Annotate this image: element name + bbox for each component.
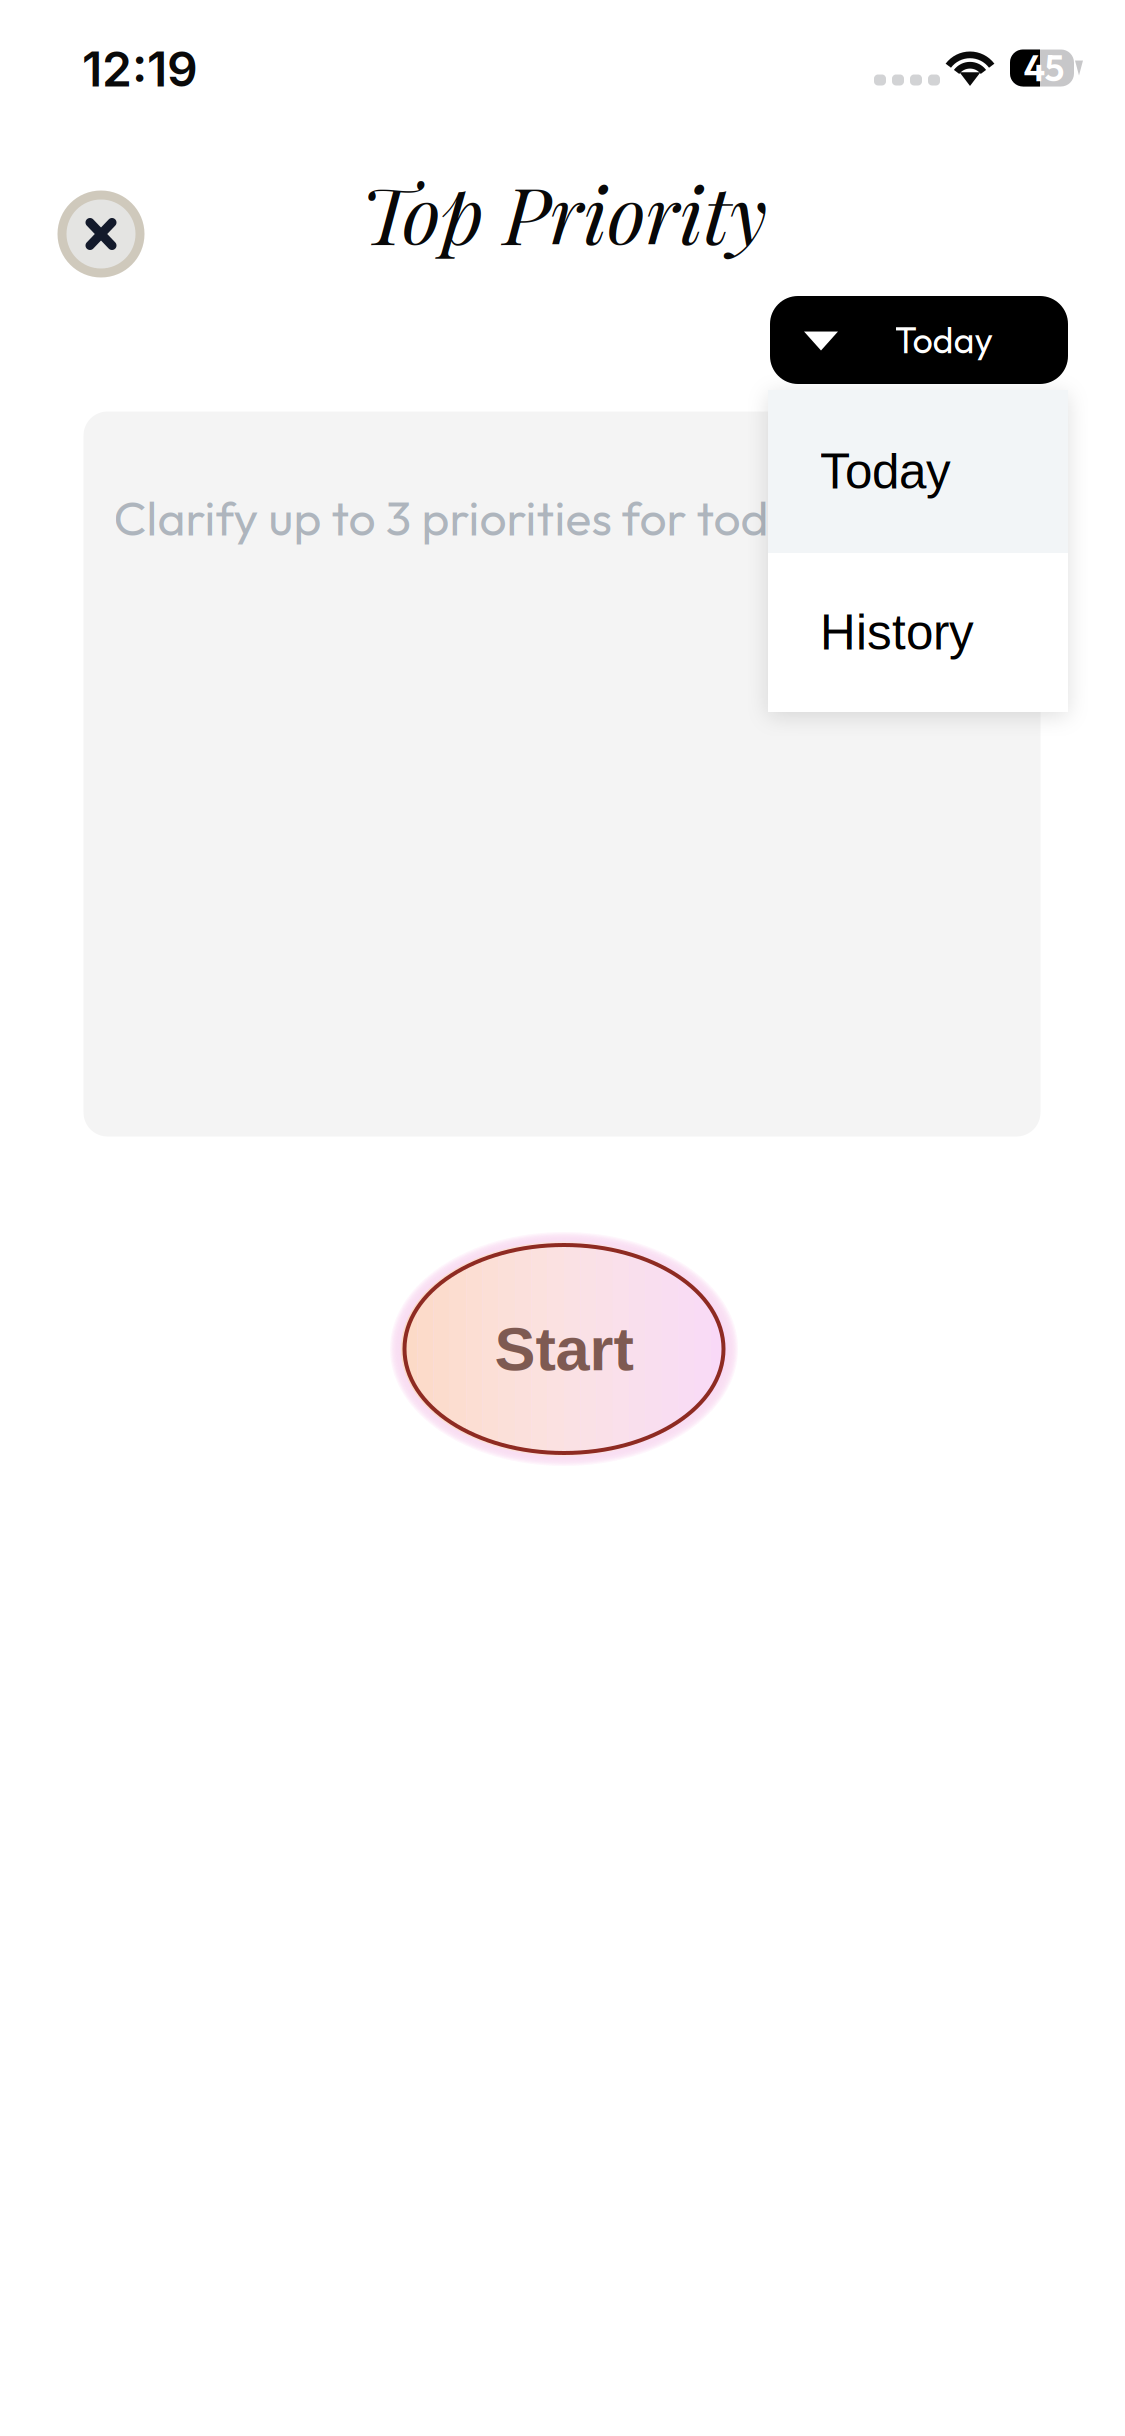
staticText: Clarify up to 3 priorities for today: [113, 487, 821, 548]
staticText: 45: [1023, 45, 1064, 91]
button[interactable]: Today: [768, 390, 1068, 553]
button[interactable]: Close: [53, 186, 149, 282]
staticText: History: [820, 605, 974, 660]
staticText: Today: [820, 444, 951, 499]
button[interactable]: History: [768, 553, 1068, 712]
staticText: 12:19: [82, 40, 198, 98]
staticText: Start: [494, 1315, 633, 1383]
button[interactable]: Today: [770, 296, 1068, 384]
staticText: Top Priority: [360, 160, 767, 264]
button[interactable]: Start: [386, 1227, 742, 1471]
staticText: Today: [894, 317, 993, 363]
